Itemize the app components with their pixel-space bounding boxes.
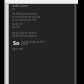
staticText: type and — [12, 47, 24, 51]
staticText: to revolutionize spirits — [12, 15, 40, 19]
staticText: ready made to feel good — [21, 40, 46, 46]
staticText: distilled and bottled — [12, 12, 38, 16]
staticText: audio to — [12, 22, 23, 26]
staticText: to revolutionize the — [12, 18, 37, 22]
staticText: So — [13, 39, 20, 46]
staticText: spirits — [12, 25, 20, 29]
staticText: ps — [12, 7, 15, 11]
staticText: distilled from grains — [12, 34, 38, 38]
button[interactable]: So — [13, 38, 46, 47]
staticText: work second spirits — [12, 31, 37, 35]
staticText: audio source — [12, 4, 29, 8]
button[interactable]: App bar — [5, 0, 78, 4]
